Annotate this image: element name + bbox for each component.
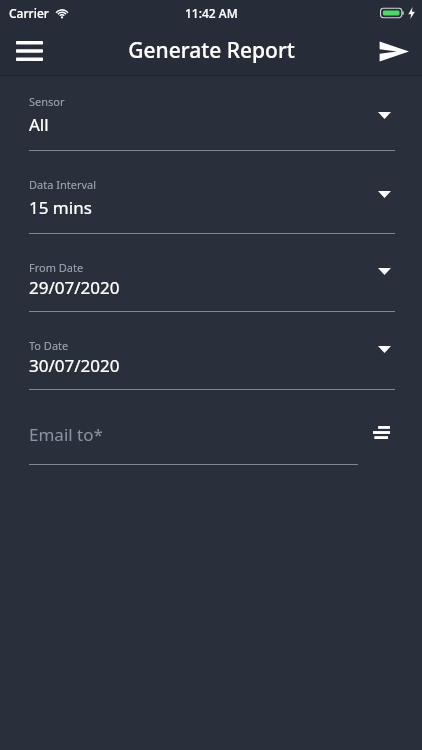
button[interactable]: From Date <box>0 234 422 312</box>
button[interactable]: Choose contacts <box>366 417 396 447</box>
button[interactable]: Email to* <box>0 390 422 465</box>
staticText: Data Interval <box>29 177 97 192</box>
button[interactable]: Send <box>370 27 418 75</box>
staticText: 11:42 AM <box>185 5 238 21</box>
staticText: Sensor <box>29 94 65 109</box>
staticText: 30/07/2020 <box>29 354 120 377</box>
staticText: Email to* <box>29 423 103 446</box>
staticText: 29/07/2020 <box>29 276 120 299</box>
staticText: From Date <box>29 260 84 275</box>
button[interactable]: Menu <box>5 27 53 75</box>
staticText: Generate Report <box>128 36 295 65</box>
button[interactable]: Sensor <box>0 76 422 151</box>
button[interactable]: Data Interval <box>0 151 422 234</box>
staticText: Carrier <box>9 5 49 21</box>
staticText: 15 mins <box>29 196 92 219</box>
staticText: All <box>29 113 49 136</box>
staticText: To Date <box>29 338 69 353</box>
button[interactable]: To Date <box>0 312 422 390</box>
